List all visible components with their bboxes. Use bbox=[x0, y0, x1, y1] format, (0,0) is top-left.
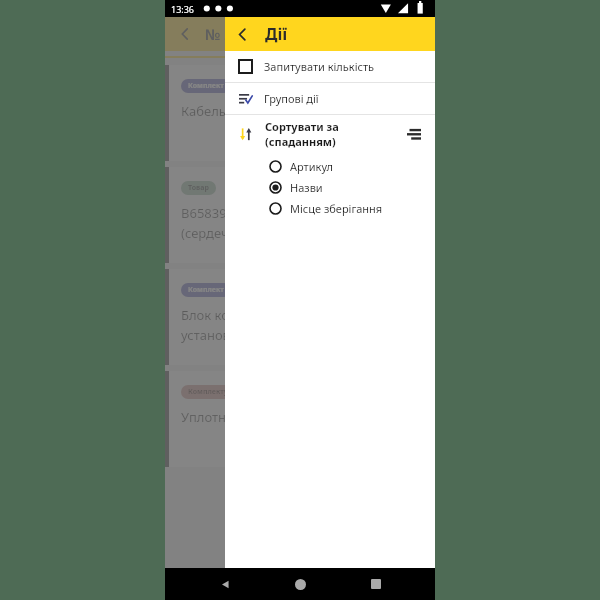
button[interactable]: Запитувати кількість bbox=[225, 51, 435, 82]
button[interactable]: Back bbox=[209, 568, 241, 600]
staticText: Місце зберігання bbox=[290, 201, 383, 216]
staticText: Артикул bbox=[290, 159, 333, 174]
button[interactable]: Сортувати за bbox=[225, 115, 435, 153]
staticText: Назви bbox=[290, 180, 323, 195]
button[interactable]: Recents bbox=[360, 568, 392, 600]
button[interactable]: Home bbox=[284, 568, 316, 600]
staticText: Групові дії bbox=[264, 91, 319, 106]
staticText: Блок ком bbox=[181, 306, 239, 324]
staticText: B65839- bbox=[181, 204, 231, 222]
staticText: Комплект bbox=[188, 285, 224, 295]
staticText: Запитувати кількість bbox=[264, 59, 375, 74]
staticText: Товар bbox=[188, 183, 209, 193]
staticText: Сортувати за bbox=[265, 119, 339, 134]
button[interactable]: Назви bbox=[225, 177, 435, 198]
staticText: Кабель Д bbox=[181, 102, 239, 120]
staticText: установ bbox=[181, 326, 230, 344]
button[interactable]: Групові дії bbox=[225, 83, 435, 114]
button[interactable]: Місце зберігання bbox=[225, 198, 435, 219]
button[interactable]: Артикул bbox=[225, 156, 435, 177]
button[interactable]: Back bbox=[225, 17, 259, 51]
staticText: Комплектук bbox=[188, 387, 233, 397]
staticText: № 2 bbox=[205, 24, 233, 44]
staticText: Уплотни bbox=[181, 408, 235, 426]
staticText: (спаданням) bbox=[265, 134, 336, 149]
staticText: Комплект bbox=[188, 81, 224, 91]
staticText: 13:36 bbox=[171, 3, 195, 15]
button[interactable]: Sort order bbox=[399, 119, 429, 149]
staticText: Дії bbox=[265, 23, 288, 45]
staticText: (сердечн bbox=[181, 224, 237, 242]
